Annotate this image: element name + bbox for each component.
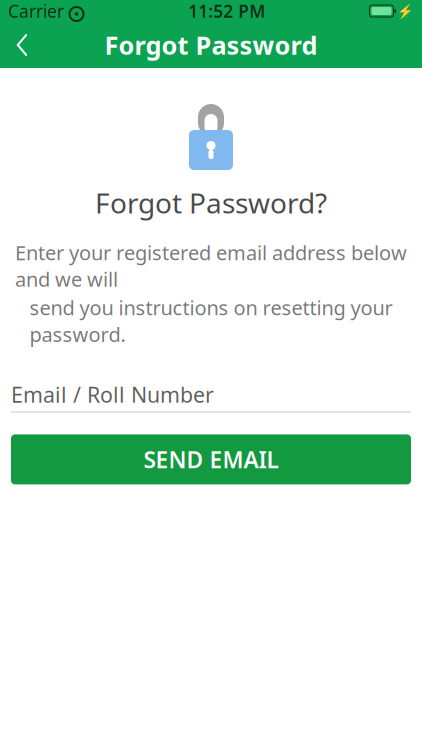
staticText: Forgot Password — [104, 28, 317, 62]
staticText: Enter your registered email address belo… — [15, 239, 407, 292]
staticText: Email / Roll Number — [11, 380, 214, 409]
staticText: 11:52 PM — [188, 0, 265, 22]
staticText: ⚡ — [397, 3, 414, 19]
staticText: Forgot Password? — [95, 184, 327, 221]
staticText: Carrier — [8, 0, 64, 22]
staticText: SEND EMAIL — [143, 444, 278, 474]
button[interactable]: Back — [0, 23, 44, 67]
button[interactable]: SEND EMAIL — [11, 434, 411, 484]
staticText: send you instructions on resetting your … — [29, 294, 392, 347]
